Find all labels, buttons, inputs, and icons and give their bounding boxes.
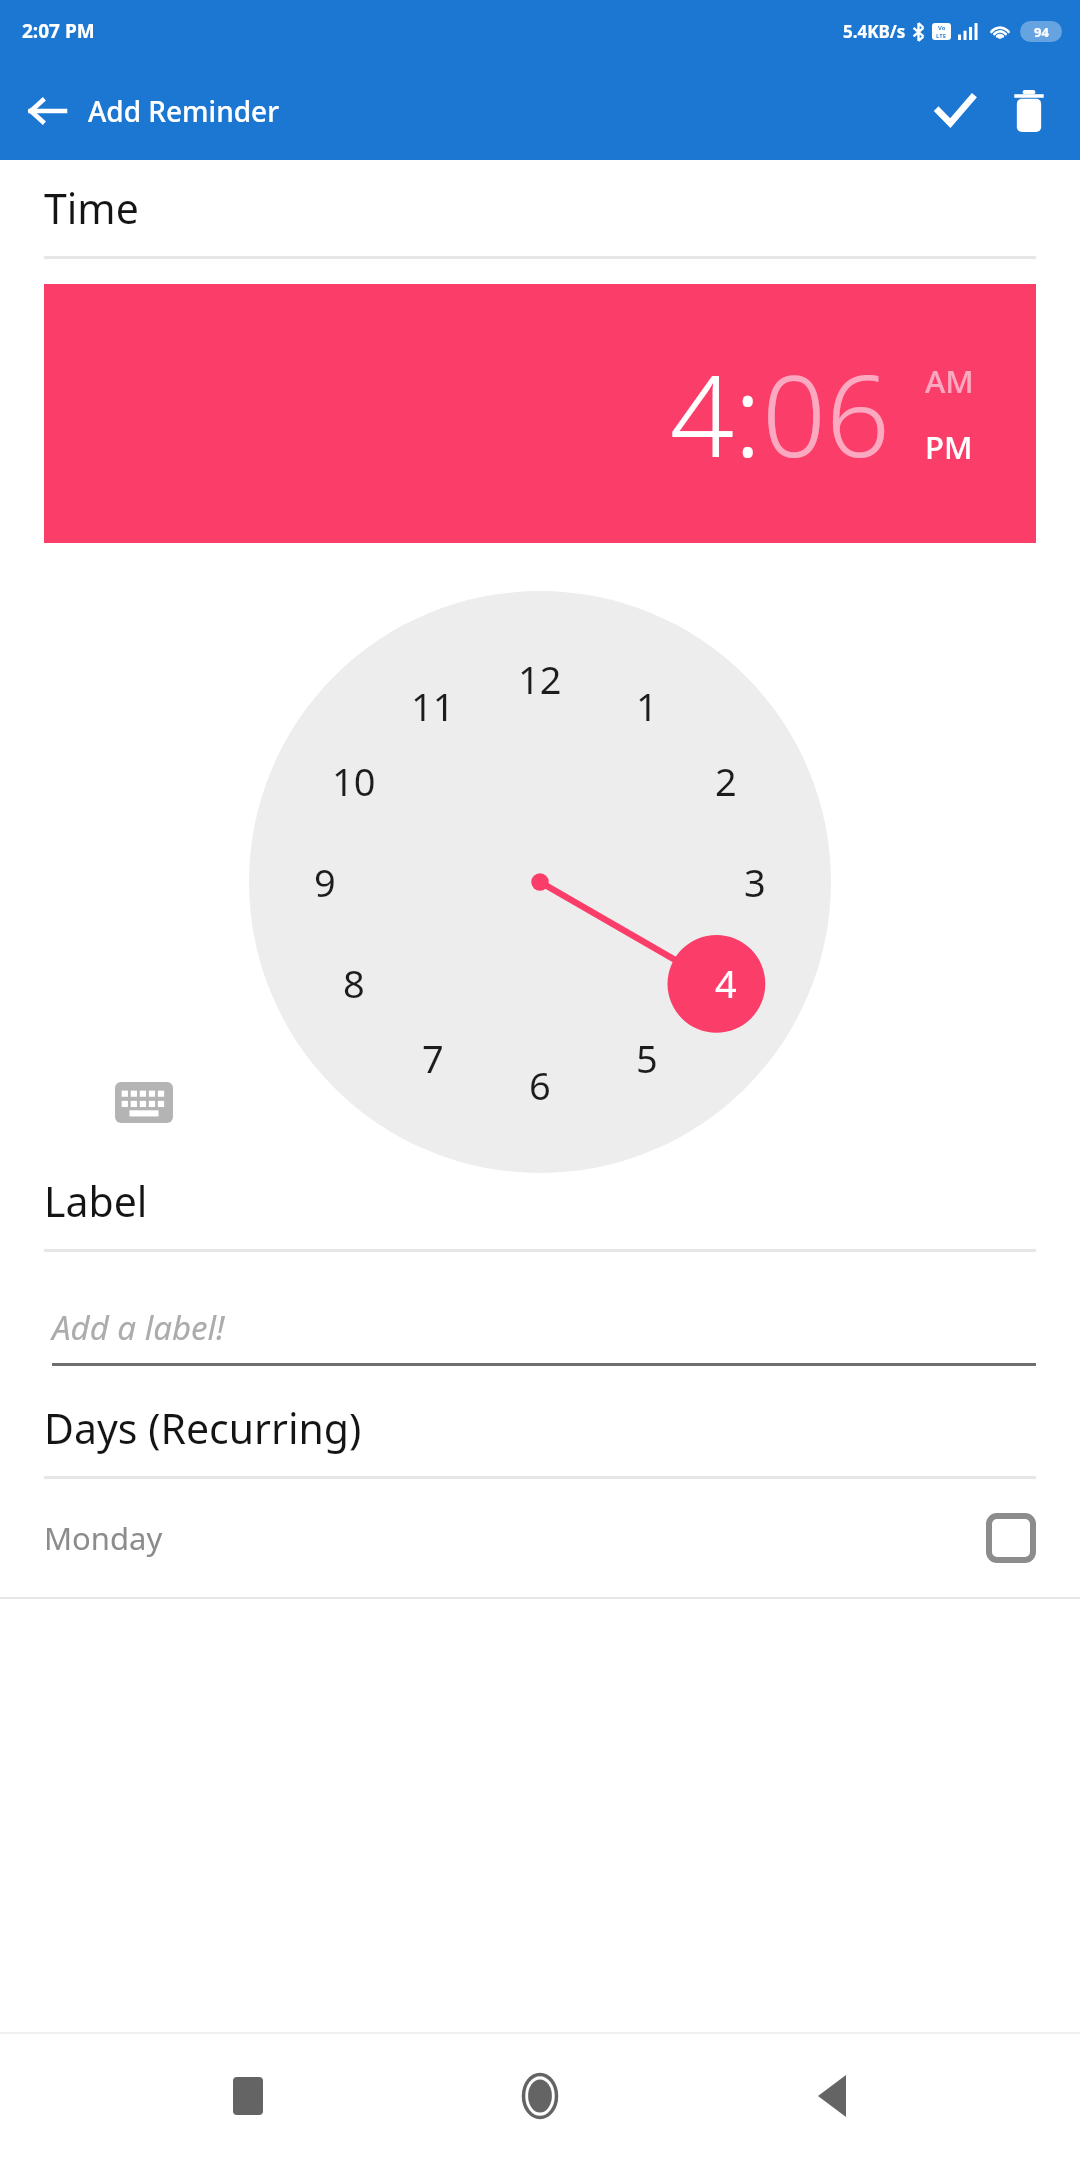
button[interactable]: PM [925, 426, 973, 468]
staticText: 06 [762, 337, 890, 490]
staticText: 11 [411, 680, 455, 732]
staticText: 12 [518, 653, 562, 705]
staticText: Add Reminder [88, 92, 280, 130]
staticText: 4 [715, 957, 737, 1009]
button[interactable]: Back [784, 2048, 880, 2144]
staticText: 2:07 PM [22, 18, 95, 44]
button[interactable]: Switch to keyboard input [115, 1082, 173, 1123]
staticText: Add a label! [52, 1305, 225, 1350]
staticText: 8 [343, 957, 365, 1009]
staticText: 5.4KB/s [843, 20, 906, 43]
staticText: LTE [936, 32, 947, 40]
staticText: 2 [715, 755, 737, 807]
button[interactable]: Add a label! [52, 1288, 1036, 1366]
staticText: 1 [636, 680, 658, 732]
staticText: 94 [1034, 23, 1049, 41]
staticText: 4: [670, 337, 762, 490]
button[interactable]: AM [925, 360, 974, 402]
button[interactable]: 4: [44, 284, 1036, 543]
staticText: 3 [744, 856, 766, 908]
staticText: Vo [938, 24, 946, 32]
button[interactable]: Home [492, 2048, 588, 2144]
button[interactable]: Back [14, 78, 80, 144]
staticText: 5 [636, 1032, 658, 1084]
staticText: Label [44, 1173, 148, 1229]
staticText: 6 [529, 1059, 551, 1111]
button[interactable]: Delete [992, 74, 1066, 148]
staticText: 7 [422, 1032, 444, 1084]
staticText: Time [44, 180, 139, 236]
staticText: Monday [44, 1517, 163, 1559]
staticText: 9 [314, 856, 336, 908]
staticText: 10 [332, 755, 376, 807]
staticText: Days (Recurring) [44, 1400, 362, 1456]
button[interactable]: Recent apps [200, 2048, 296, 2144]
button[interactable]: Monday [0, 1479, 1080, 1597]
button[interactable]: Save [918, 74, 992, 148]
